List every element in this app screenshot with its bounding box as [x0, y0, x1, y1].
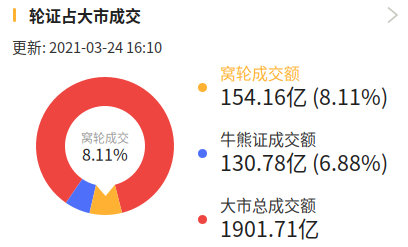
staticText: 154.16亿 (8.11%): [220, 80, 388, 111]
staticText: 轮证占大市成交: [29, 3, 141, 27]
button[interactable]: 轮证占大市成交: [0, 0, 408, 30]
staticText: 大市总成交额: [220, 193, 316, 216]
staticText: 牛熊证成交额: [220, 127, 316, 150]
staticText: 8.11%: [82, 142, 128, 165]
staticText: 窝轮成交额: [220, 61, 300, 84]
staticText: 窝轮成交: [81, 129, 129, 146]
staticText: 1901.71亿: [220, 212, 319, 243]
staticText: 130.78亿 (6.88%): [220, 146, 388, 177]
staticText: 更新: 2021-03-24 16:10: [12, 36, 162, 57]
